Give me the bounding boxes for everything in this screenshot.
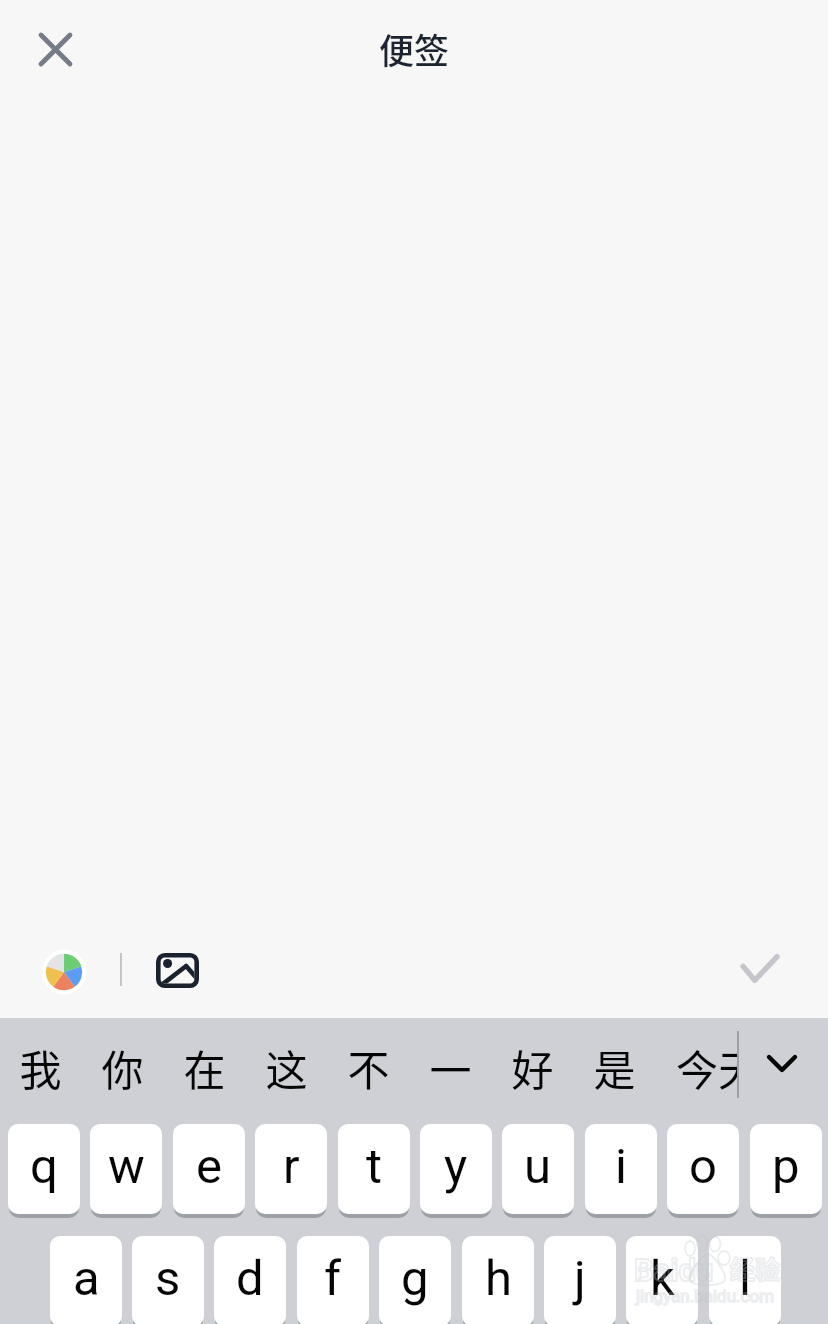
staticText: 便签 (0, 23, 828, 74)
staticText: d (236, 1250, 264, 1307)
button[interactable]: u (502, 1124, 574, 1214)
button[interactable]: Text colour (39, 947, 89, 997)
button[interactable]: r (255, 1124, 327, 1214)
button[interactable]: 好 (491, 1028, 573, 1107)
button[interactable]: 是 (573, 1028, 655, 1107)
button[interactable]: f (297, 1236, 369, 1324)
button[interactable]: d (214, 1236, 286, 1324)
button[interactable]: k (626, 1236, 698, 1324)
button[interactable]: g (379, 1236, 451, 1324)
staticText: g (401, 1250, 429, 1307)
button[interactable]: q (8, 1124, 80, 1214)
staticText: 今天 (676, 1037, 737, 1098)
staticText: 不 (347, 1037, 390, 1098)
button[interactable]: 今天 (676, 1028, 737, 1107)
staticText: a (73, 1250, 100, 1307)
staticText: u (524, 1138, 552, 1195)
staticText: f (324, 1250, 342, 1307)
button[interactable]: o (667, 1124, 739, 1214)
button[interactable]: j (544, 1236, 616, 1324)
button[interactable]: 在 (163, 1028, 245, 1107)
staticText: 你 (101, 1037, 144, 1098)
button[interactable]: Done (738, 945, 788, 995)
button[interactable]: 不 (327, 1028, 409, 1107)
staticText: j (574, 1250, 586, 1307)
staticText: w (108, 1138, 145, 1195)
staticText: 经验 (730, 1250, 781, 1286)
button[interactable]: 你 (81, 1028, 163, 1107)
staticText: s (155, 1250, 181, 1307)
staticText: t (366, 1138, 383, 1195)
staticText: r (283, 1138, 300, 1195)
button[interactable]: 一 (409, 1028, 491, 1107)
staticText: o (689, 1138, 717, 1195)
button[interactable]: h (462, 1236, 534, 1324)
staticText: l (739, 1250, 751, 1307)
button[interactable]: e (173, 1124, 245, 1214)
button[interactable]: p (750, 1124, 822, 1214)
button[interactable]: i (585, 1124, 657, 1214)
staticText: 我 (19, 1037, 62, 1098)
button[interactable]: y (420, 1124, 492, 1214)
staticText: k (650, 1250, 675, 1307)
button[interactable]: Collapse keyboard (748, 1026, 818, 1098)
staticText: q (30, 1138, 58, 1195)
button[interactable]: t (338, 1124, 410, 1214)
button[interactable]: Insert picture (152, 945, 202, 995)
staticText: h (485, 1250, 512, 1307)
button[interactable]: a (50, 1236, 122, 1324)
staticText: 这 (265, 1037, 308, 1098)
button[interactable]: w (90, 1124, 162, 1214)
staticText: 在 (183, 1037, 226, 1098)
button[interactable]: l (709, 1236, 781, 1324)
staticText: e (196, 1138, 222, 1195)
button[interactable]: Close (28, 21, 84, 77)
staticText: 好 (511, 1037, 554, 1098)
button[interactable]: 我 (0, 1028, 81, 1107)
staticText: 一 (429, 1037, 472, 1098)
staticText: jingyan.baidu.com (636, 1286, 775, 1306)
staticText: 是 (593, 1037, 636, 1098)
staticText: i (615, 1138, 627, 1195)
staticText: y (444, 1138, 468, 1195)
staticText: Baidu (634, 1252, 714, 1288)
button[interactable]: s (132, 1236, 204, 1324)
button[interactable]: 这 (245, 1028, 327, 1107)
staticText: p (772, 1138, 800, 1195)
